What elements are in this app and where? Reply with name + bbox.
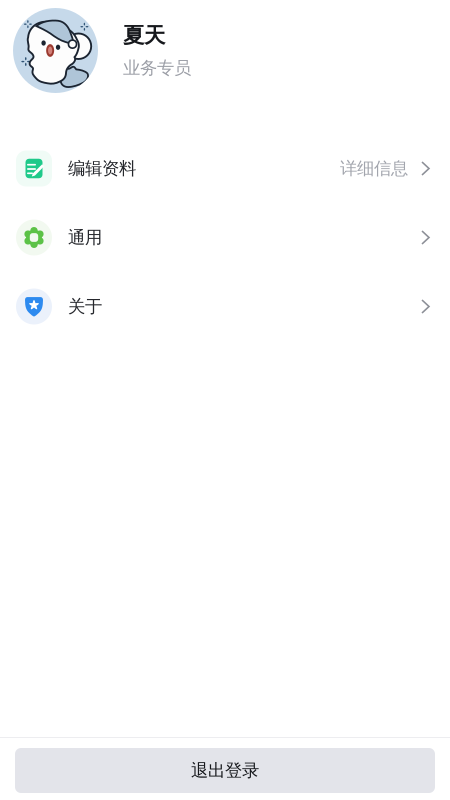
staticText: 通用 <box>68 227 102 248</box>
staticText: 关于 <box>68 296 102 317</box>
staticText: 编辑资料 <box>68 158 136 179</box>
staticText: 业务专员 <box>123 57 191 79</box>
button[interactable]: 编辑资料 <box>0 134 450 203</box>
staticText: 夏天 <box>123 22 165 48</box>
button[interactable]: 通用 <box>0 203 450 272</box>
button[interactable]: 关于 <box>0 272 450 341</box>
staticText: 退出登录 <box>191 760 259 781</box>
button[interactable]: 退出登录 <box>15 748 435 793</box>
staticText: 详细信息 <box>340 158 408 179</box>
